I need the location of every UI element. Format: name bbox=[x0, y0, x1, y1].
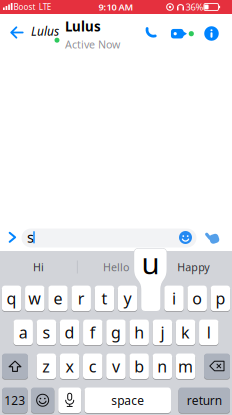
staticText: Boost bbox=[13, 1, 35, 12]
button[interactable]: f bbox=[83, 319, 102, 346]
button[interactable]: h bbox=[129, 319, 149, 346]
button[interactable] bbox=[144, 26, 158, 39]
staticText: x bbox=[65, 356, 73, 377]
staticText: s bbox=[27, 227, 34, 247]
button[interactable] bbox=[204, 26, 219, 41]
staticText: s bbox=[42, 322, 50, 343]
button[interactable]: w bbox=[25, 285, 44, 312]
staticText: Active Now bbox=[65, 37, 120, 51]
staticText: LTE bbox=[39, 1, 51, 12]
staticText: Hi bbox=[33, 260, 44, 274]
staticText: space bbox=[111, 392, 144, 408]
button[interactable]: Hello bbox=[78, 254, 154, 280]
staticText: u bbox=[141, 243, 159, 282]
button[interactable]: p bbox=[211, 285, 230, 312]
staticText: z bbox=[42, 356, 50, 377]
staticText: Lulus bbox=[65, 18, 101, 35]
staticText: r bbox=[78, 288, 85, 309]
button[interactable]: t bbox=[95, 285, 114, 312]
staticText: q bbox=[7, 288, 17, 309]
button[interactable] bbox=[2, 353, 28, 379]
button[interactable]: c bbox=[83, 353, 102, 379]
button[interactable]: v bbox=[106, 353, 126, 379]
button[interactable] bbox=[10, 27, 23, 38]
button[interactable]: m bbox=[176, 353, 195, 379]
button[interactable] bbox=[6, 232, 18, 243]
staticText: return bbox=[187, 392, 222, 408]
button[interactable] bbox=[0, 0, 232, 55]
button[interactable]: z bbox=[37, 353, 56, 379]
staticText: i bbox=[172, 288, 176, 309]
button[interactable]: r bbox=[71, 285, 91, 312]
staticText: e bbox=[53, 288, 62, 309]
staticText: Hello bbox=[103, 260, 129, 274]
button[interactable]: l bbox=[199, 319, 218, 346]
button[interactable] bbox=[31, 387, 54, 413]
staticText: g bbox=[111, 322, 121, 343]
button[interactable]: a bbox=[13, 319, 33, 346]
button[interactable]: 123 bbox=[2, 387, 27, 413]
staticText: Happy bbox=[177, 260, 209, 274]
staticText: j bbox=[160, 322, 164, 343]
staticText: n bbox=[157, 356, 167, 377]
button[interactable]: k bbox=[176, 319, 195, 346]
staticText: Lulus bbox=[31, 23, 59, 39]
button[interactable]: b bbox=[129, 353, 149, 379]
staticText: o bbox=[192, 288, 202, 309]
staticText: t bbox=[101, 288, 107, 309]
button[interactable] bbox=[204, 353, 230, 379]
button[interactable] bbox=[21, 228, 196, 247]
button[interactable]: x bbox=[60, 353, 79, 379]
button[interactable]: space bbox=[84, 387, 171, 413]
staticText: f bbox=[90, 322, 96, 343]
button[interactable]: o bbox=[187, 285, 207, 312]
staticText: m bbox=[178, 356, 193, 377]
staticText: b bbox=[134, 356, 144, 377]
button[interactable]: n bbox=[153, 353, 172, 379]
button[interactable]: Hi bbox=[1, 254, 77, 280]
button[interactable]: g bbox=[106, 319, 126, 346]
button[interactable]: y bbox=[118, 285, 137, 312]
button[interactable]: j bbox=[153, 319, 172, 346]
staticText: h bbox=[134, 322, 144, 343]
button[interactable]: return bbox=[178, 387, 230, 413]
button[interactable]: d bbox=[60, 319, 79, 346]
staticText: 36% bbox=[185, 1, 203, 13]
button[interactable]: i bbox=[164, 285, 184, 312]
button[interactable]: s bbox=[37, 319, 56, 346]
staticText: 123 bbox=[4, 392, 25, 408]
staticText: 9:10 AM bbox=[98, 1, 133, 13]
staticText: c bbox=[89, 356, 97, 377]
button[interactable]: Lulus bbox=[29, 21, 61, 41]
staticText: v bbox=[112, 356, 120, 377]
staticText: p bbox=[215, 288, 225, 309]
staticText: a bbox=[19, 322, 28, 343]
staticText: d bbox=[65, 322, 75, 343]
staticText: l bbox=[207, 322, 211, 343]
button[interactable]: Happy bbox=[155, 254, 231, 280]
button[interactable] bbox=[178, 230, 192, 244]
staticText: k bbox=[181, 322, 190, 343]
button[interactable]: e bbox=[48, 285, 68, 312]
staticText: w bbox=[28, 288, 41, 309]
staticText: y bbox=[124, 288, 132, 309]
button[interactable]: q bbox=[2, 285, 21, 312]
button[interactable] bbox=[58, 387, 81, 413]
button[interactable]: Lulus bbox=[65, 18, 135, 51]
button[interactable] bbox=[205, 230, 219, 244]
